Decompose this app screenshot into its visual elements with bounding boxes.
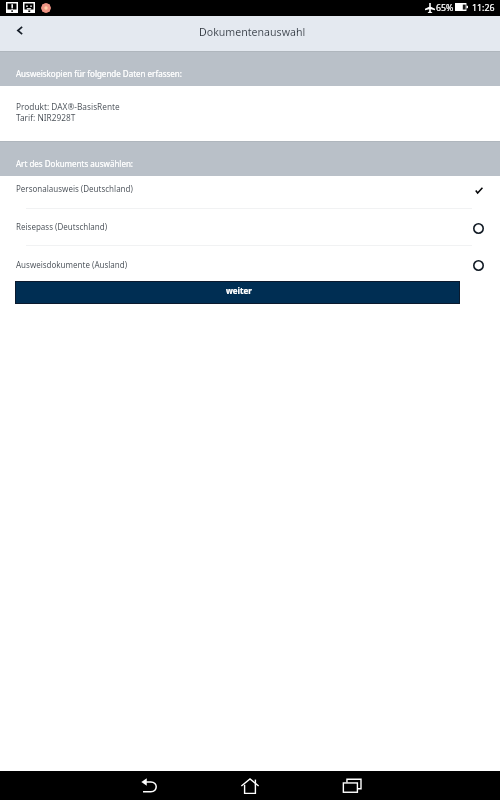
staticText: Tarif: NIR2928T [16, 112, 76, 123]
button[interactable]: Recent apps [332, 771, 372, 800]
button[interactable]: weiter [16, 282, 459, 303]
button[interactable]: Ausweisdokumente (Ausland) [0, 246, 500, 281]
staticText: Personalausweis (Deutschland) [16, 183, 133, 194]
button[interactable]: Home [230, 771, 270, 800]
button[interactable]: Reisepass (Deutschland) [0, 209, 500, 245]
staticText: Reisepass (Deutschland) [16, 221, 108, 232]
staticText: Ausweiskopien für folgende Daten erfasse… [16, 68, 182, 79]
staticText: Ausweisdokumente (Ausland) [16, 259, 128, 270]
staticText: Art des Dokuments auswählen: [16, 158, 134, 169]
staticText: weiter [226, 285, 252, 296]
button[interactable]: Back [0, 16, 38, 51]
button[interactable]: Back [129, 771, 169, 800]
button[interactable]: Personalausweis (Deutschland) [0, 176, 500, 208]
staticText: 65% [436, 2, 454, 14]
staticText: 11:26 [472, 2, 495, 14]
staticText: Dokumentenauswahl [199, 25, 306, 39]
staticText: Produkt: DAX®-BasisRente [16, 101, 120, 112]
